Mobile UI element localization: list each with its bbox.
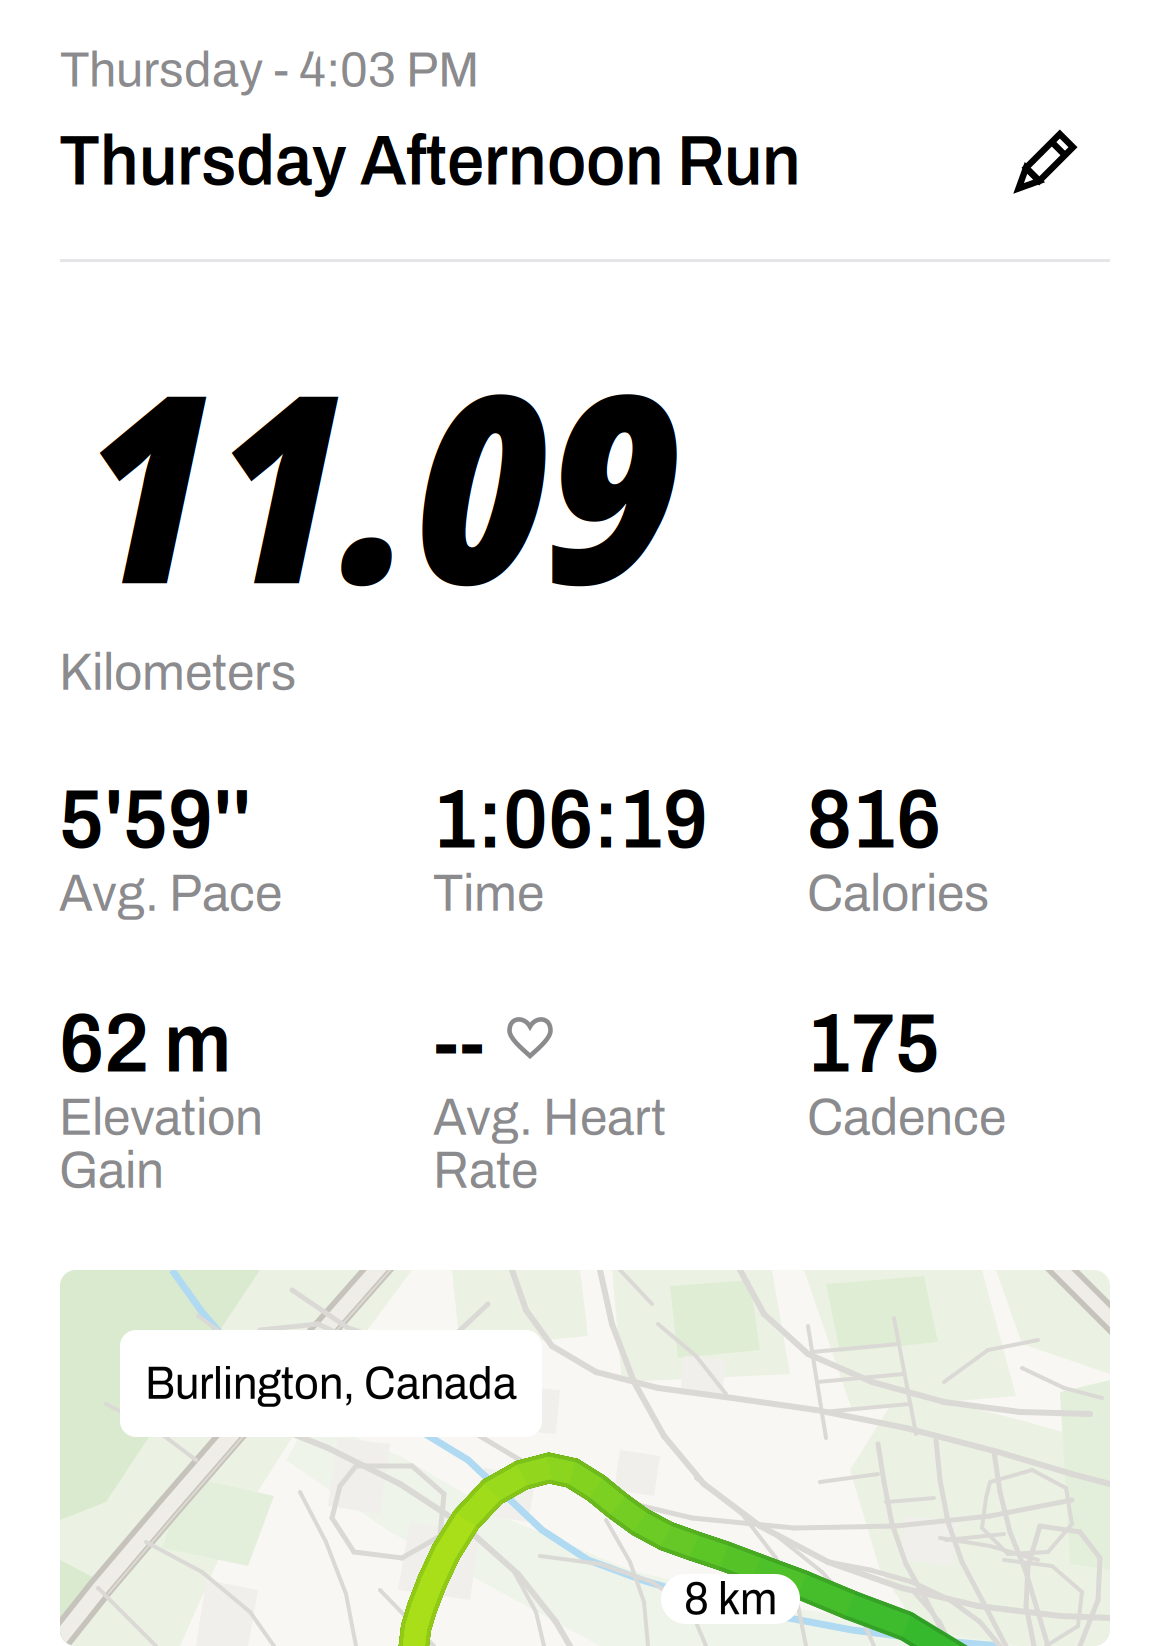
staticText: Rate — [433, 1142, 538, 1199]
button[interactable]: Edit run name — [0, 0, 107, 107]
staticText: 1:06:19 — [433, 775, 708, 865]
staticText: Burlington, Canada — [145, 1359, 517, 1408]
staticText: Avg. Pace — [59, 865, 282, 922]
staticText: Kilometers — [59, 644, 296, 701]
staticText: Thursday - 4:03 PM — [60, 42, 479, 97]
staticText: 175 — [807, 999, 940, 1089]
staticText: -- — [433, 999, 485, 1089]
staticText: Calories — [807, 865, 989, 922]
staticText: Cadence — [807, 1089, 1006, 1146]
staticText: 62 m — [59, 999, 231, 1089]
staticText: 11.09 — [78, 304, 678, 660]
staticText: Elevation — [59, 1089, 263, 1146]
staticText: 8 km — [684, 1574, 777, 1624]
staticText: 816 — [807, 775, 941, 865]
staticText: Time — [433, 865, 544, 922]
staticText: Avg. Heart — [433, 1089, 666, 1146]
staticText: Gain — [59, 1142, 164, 1199]
staticText: 5'59'' — [59, 775, 251, 865]
staticText: Thursday Afternoon Run — [59, 123, 801, 199]
